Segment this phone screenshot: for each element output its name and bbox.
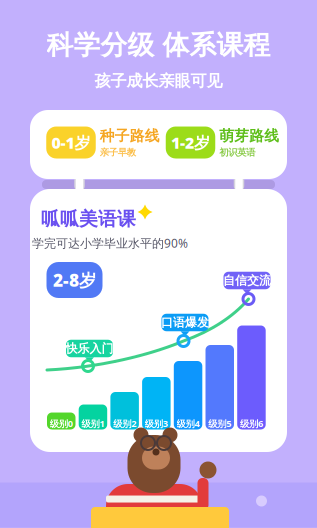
staticText: 级别5 (208, 417, 231, 430)
staticText: 1-2岁 (171, 132, 210, 153)
staticText: 快乐入门 (65, 341, 113, 356)
staticText: 级别4 (177, 417, 200, 430)
staticText: 级别2 (113, 417, 136, 430)
staticText: 口语爆发 (161, 315, 209, 330)
staticText: 学完可达小学毕业水平的90% (32, 235, 188, 251)
staticText: 呱呱美语课 (41, 207, 136, 230)
staticText: 亲子早教 (100, 147, 136, 158)
staticText: 萌芽路线 (219, 127, 279, 145)
button[interactable]: 0-1岁 (46, 126, 160, 158)
staticText: 级别3 (145, 417, 168, 430)
button[interactable]: 1-2岁 (166, 126, 279, 158)
staticText: 2-8岁 (53, 268, 96, 291)
staticText: 种子路线 (100, 127, 160, 145)
staticText: 级别1 (81, 417, 104, 430)
staticText: 初识英语 (219, 147, 255, 158)
staticText: 0-1岁 (51, 132, 90, 153)
staticText: 级别0 (50, 417, 73, 430)
staticText: 自信交流 (223, 273, 271, 288)
staticText: 科学分级 体系课程 (46, 29, 270, 61)
staticText: 级别6 (240, 417, 263, 430)
staticText: 孩子成长亲眼可见 (94, 71, 222, 91)
